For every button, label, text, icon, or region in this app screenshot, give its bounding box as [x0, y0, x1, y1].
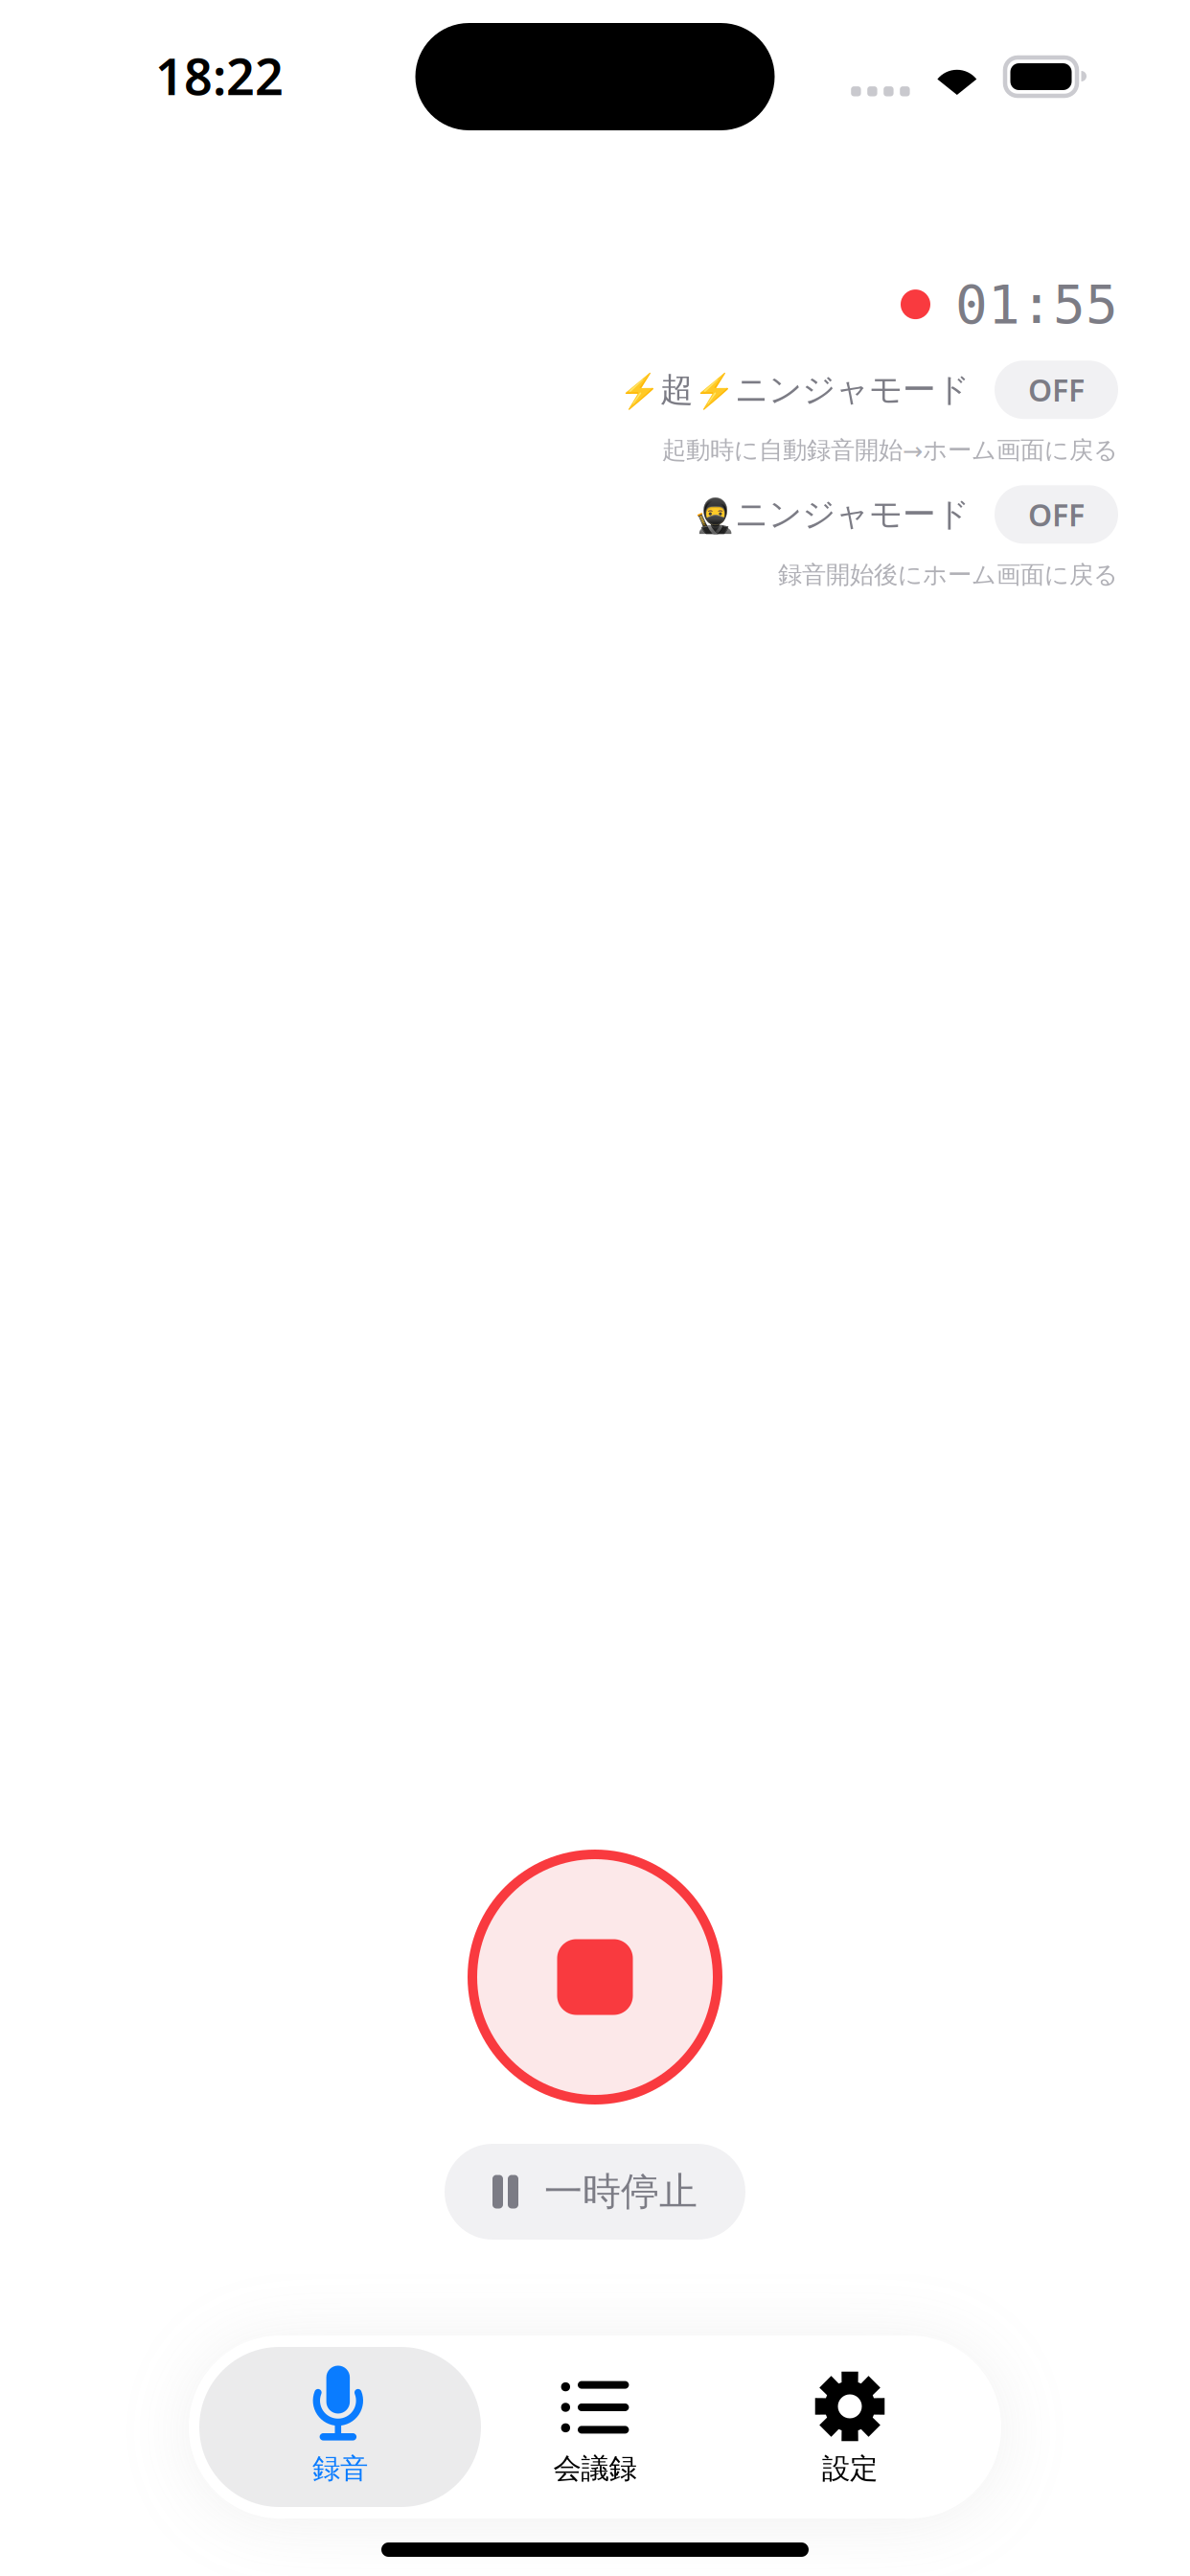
staticText: 設定 [822, 2451, 878, 2486]
button[interactable]: 🥷ニンジャモード [694, 485, 1118, 544]
button[interactable]: 一時停止 [445, 2144, 745, 2240]
button[interactable]: ⚡️超⚡️ニンジャモード [619, 361, 1118, 419]
button[interactable]: 会議録 [468, 2347, 722, 2507]
staticText: 18:22 [155, 43, 284, 109]
button[interactable]: Stop recording [468, 1850, 722, 2104]
staticText: 🥷ニンジャモード [694, 494, 970, 535]
staticText: 起動時に自動録音開始→ホーム画面に戻る [662, 435, 1118, 465]
button[interactable]: 録音 [213, 2347, 468, 2507]
staticText: ⚡️超⚡️ニンジャモード [619, 369, 970, 410]
staticText: 録音開始後にホーム画面に戻る [778, 560, 1118, 590]
staticText: 録音 [312, 2451, 368, 2486]
staticText: 会議録 [553, 2451, 637, 2486]
staticText: 一時停止 [544, 2168, 698, 2215]
staticText: 01:55 [955, 273, 1118, 336]
staticText: OFF [1028, 494, 1085, 535]
staticText: OFF [1028, 369, 1085, 410]
button[interactable]: 設定 [722, 2347, 977, 2507]
